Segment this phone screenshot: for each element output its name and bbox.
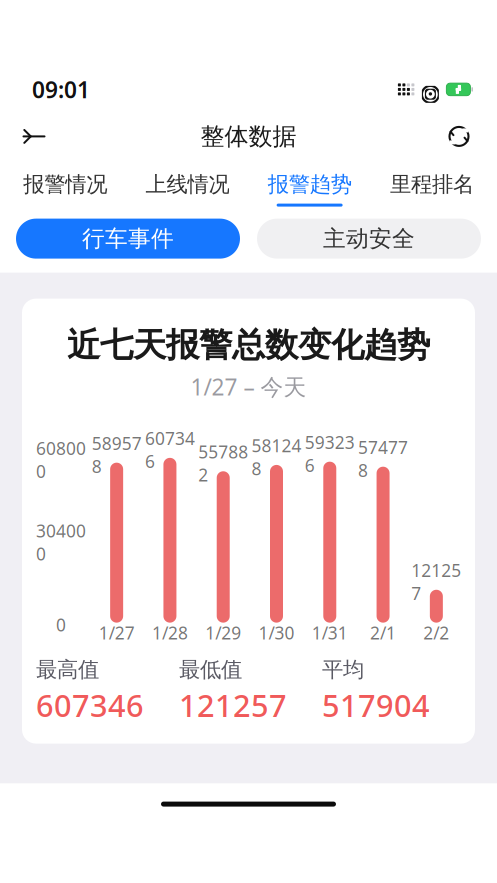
staticText: 304000 <box>36 519 86 565</box>
staticText: 最低值 <box>179 657 242 683</box>
staticText: 1/27 <box>99 621 135 644</box>
staticText: 整体数据 <box>200 122 296 151</box>
staticText: 121257 <box>411 559 461 605</box>
staticText: 557882 <box>198 440 248 486</box>
staticText: 报警趋势 <box>268 171 352 198</box>
staticText: 607346 <box>36 685 144 726</box>
staticText: 0 <box>56 613 66 636</box>
staticText: 主动安全 <box>323 225 415 252</box>
staticText: 589578 <box>92 432 142 478</box>
staticText: 上线情况 <box>145 171 229 198</box>
staticText: 报警情况 <box>23 171 107 198</box>
button[interactable]: 里程排名 <box>371 161 493 211</box>
staticText: 121257 <box>179 685 287 726</box>
button[interactable]: 上线情况 <box>126 161 248 211</box>
staticText: 1/29 <box>205 621 241 644</box>
staticText: 1/31 <box>312 621 348 644</box>
staticText: 09:01 <box>32 74 90 104</box>
staticText: 574778 <box>358 436 408 482</box>
staticText: 最高值 <box>36 657 99 683</box>
staticText: 2/1 <box>370 621 396 644</box>
staticText: 2/2 <box>423 621 449 644</box>
button[interactable]: 报警趋势 <box>248 161 371 211</box>
staticText: 近七天报警总数变化趋势 <box>67 325 430 365</box>
staticText: 608000 <box>36 437 86 483</box>
staticText: 593236 <box>305 431 355 477</box>
staticText: 607346 <box>145 427 195 473</box>
staticText: 517904 <box>322 685 430 726</box>
button[interactable]: 返回 <box>8 113 60 159</box>
staticText: 里程排名 <box>390 171 474 198</box>
staticText: 581248 <box>251 434 301 480</box>
button[interactable]: 报警情况 <box>4 161 126 211</box>
staticText: 1/27 – 今天 <box>190 372 306 402</box>
staticText: 1/30 <box>258 621 294 644</box>
button[interactable]: 刷新 <box>433 113 485 159</box>
staticText: 行车事件 <box>82 225 174 252</box>
button[interactable]: 行车事件 <box>16 219 240 259</box>
staticText: 平均 <box>322 657 364 683</box>
button[interactable]: 主动安全 <box>257 219 481 259</box>
staticText: 1/28 <box>152 621 188 644</box>
